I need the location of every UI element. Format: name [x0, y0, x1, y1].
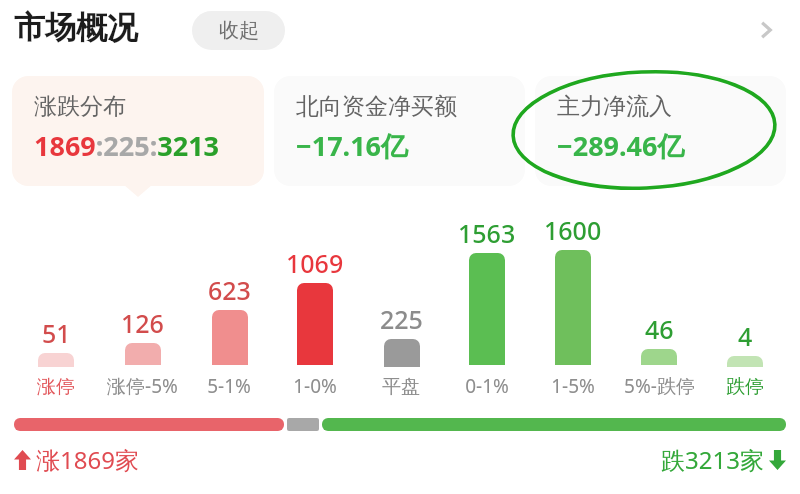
- staticText: 跌3213家: [661, 443, 764, 476]
- staticText: 1069: [286, 246, 344, 280]
- staticText: 收起: [219, 18, 259, 43]
- staticText: 1-0%: [293, 373, 337, 399]
- staticText: 市场概况: [14, 8, 138, 47]
- button[interactable]: 主力净流入: [535, 76, 786, 186]
- button[interactable]: 涨跌分布: [12, 76, 264, 186]
- staticText: 主力净流入: [557, 92, 672, 121]
- staticText: 平盘: [382, 375, 420, 399]
- staticText: 涨跌分布: [34, 92, 126, 121]
- staticText: 北向资金净买额: [296, 92, 457, 121]
- button[interactable]: 涨1869家: [14, 443, 139, 476]
- staticText: −289.46亿: [557, 127, 685, 164]
- button[interactable]: 跌3213家: [661, 443, 786, 476]
- staticText: 0-1%: [465, 373, 509, 399]
- button[interactable]: 北向资金净买额: [274, 76, 525, 186]
- staticText: −17.16亿: [296, 127, 409, 164]
- staticText: 涨停: [37, 375, 75, 399]
- staticText: 涨1869家: [36, 443, 139, 476]
- staticText: 1600: [544, 213, 602, 247]
- staticText: 4: [738, 319, 753, 353]
- staticText: 1-5%: [551, 373, 595, 399]
- staticText: 涨停-5%: [107, 373, 178, 399]
- staticText: 5-1%: [207, 373, 251, 399]
- button[interactable]: 收起: [192, 11, 285, 50]
- staticText: 1869:225:3213: [34, 127, 220, 164]
- staticText: 1563: [458, 216, 516, 250]
- staticText: 225: [380, 302, 423, 336]
- button[interactable]: More: [742, 6, 790, 54]
- staticText: 46: [645, 312, 674, 346]
- staticText: 126: [121, 306, 164, 340]
- staticText: 跌停: [726, 375, 764, 399]
- staticText: 623: [208, 273, 251, 307]
- staticText: 51: [42, 316, 71, 350]
- staticText: 5%-跌停: [624, 373, 695, 399]
